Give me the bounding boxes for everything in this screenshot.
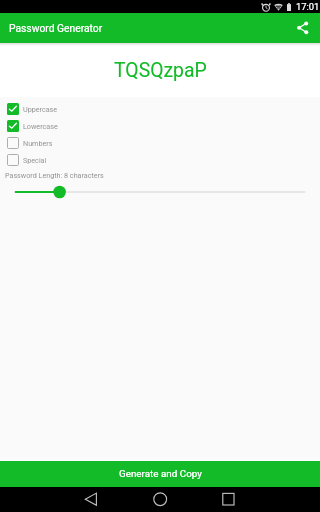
button[interactable]: Lowercase (0, 117, 320, 134)
button[interactable]: Home (140, 487, 180, 512)
button[interactable]: Back (71, 487, 111, 512)
button[interactable]: Generate and Copy (0, 461, 320, 487)
staticText: TQSQzpaP (114, 59, 207, 82)
staticText: Password Length: 8 characters (5, 171, 104, 179)
button[interactable]: Numbers (0, 134, 320, 151)
button[interactable]: Special (0, 151, 320, 168)
staticText: Generate and Copy (119, 468, 202, 480)
button[interactable]: Uppercase (0, 100, 320, 117)
staticText: Special (23, 156, 47, 164)
button[interactable] (0, 185, 320, 199)
staticText: Password Generator (9, 22, 103, 34)
button[interactable]: Share (290, 13, 320, 43)
staticText: Uppercase (23, 105, 58, 113)
button[interactable]: Recents (208, 487, 248, 512)
staticText: 17:01 (296, 1, 320, 12)
staticText: Numbers (23, 139, 53, 147)
staticText: Lowercase (23, 122, 58, 130)
